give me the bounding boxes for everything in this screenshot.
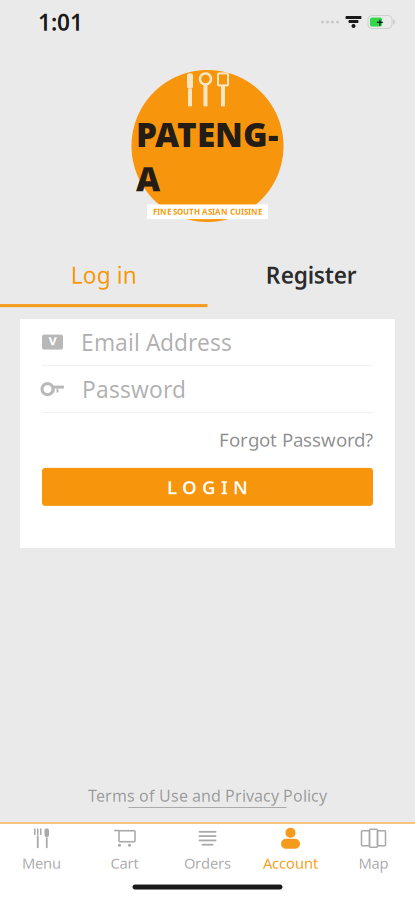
staticText: Cart (110, 853, 138, 873)
button[interactable]: Log in (0, 246, 207, 307)
button[interactable]: Orders (166, 821, 249, 877)
button[interactable]: Register (207, 246, 415, 307)
button[interactable]: Map (332, 821, 415, 877)
staticText: Menu (22, 853, 61, 873)
staticText: + (376, 14, 383, 30)
staticText: Register (266, 260, 357, 290)
staticText: Terms of Use and Privacy Policy (88, 785, 327, 806)
staticText: Orders (184, 853, 231, 873)
staticText: Password (82, 374, 186, 404)
button[interactable]: Forgot Password? (219, 419, 373, 460)
staticText: L O G I N (167, 474, 248, 499)
staticText: Log in (71, 260, 137, 290)
staticText: PATENGA (136, 112, 279, 200)
staticText: 1:01 (38, 7, 83, 37)
button[interactable]: Menu (0, 821, 83, 877)
button[interactable]: Terms of Use and Privacy Policy (88, 779, 327, 814)
button[interactable]: Account (249, 821, 332, 877)
staticText: v (48, 330, 56, 349)
staticText: Forgot Password? (219, 427, 373, 452)
button[interactable]: L O G I N (42, 468, 373, 506)
staticText: Email Address (81, 327, 232, 357)
button[interactable]: Cart (83, 821, 166, 877)
staticText: Map (358, 853, 388, 873)
staticText: Account (263, 853, 318, 873)
staticText: FINE SOUTH ASIAN CUISINE (153, 206, 262, 217)
